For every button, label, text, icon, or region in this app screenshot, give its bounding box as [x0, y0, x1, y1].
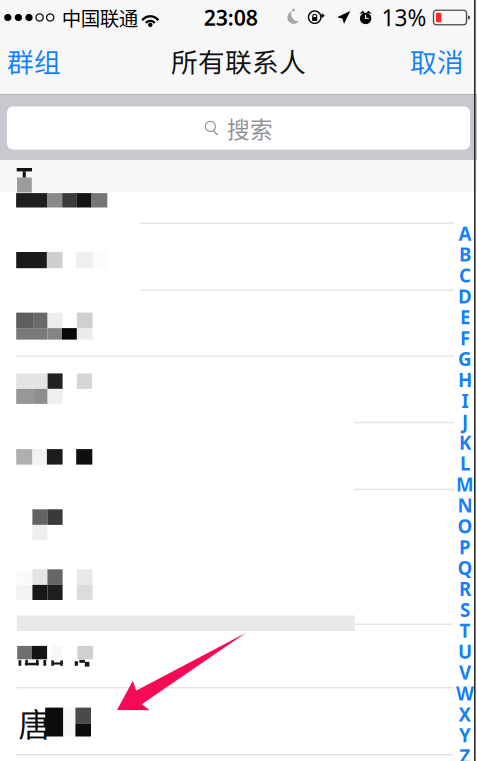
- staticText: E: [460, 305, 470, 329]
- staticText: J: [462, 409, 468, 434]
- staticText: U: [458, 639, 472, 664]
- staticText: C: [459, 263, 471, 288]
- staticText: G: [458, 346, 472, 371]
- staticText: P: [459, 535, 471, 559]
- staticText: T: [459, 618, 470, 643]
- staticText: M: [456, 472, 474, 497]
- staticText: A: [458, 221, 471, 246]
- staticText: V: [459, 660, 471, 685]
- button[interactable]: 搜索: [7, 106, 470, 149]
- staticText: L: [460, 451, 470, 476]
- staticText: 13%: [381, 2, 426, 32]
- staticText: 搜索: [227, 112, 273, 144]
- staticText: D: [458, 284, 472, 309]
- button[interactable]: [17, 556, 454, 614]
- button[interactable]: 群组: [0, 35, 68, 94]
- staticText: I: [461, 388, 468, 413]
- staticText: F: [460, 326, 470, 350]
- staticText: 取消: [410, 41, 464, 80]
- button[interactable]: 索引: [454, 223, 476, 761]
- staticText: Q: [457, 555, 472, 580]
- staticText: B: [459, 242, 471, 267]
- staticText: 中国联通: [62, 3, 138, 32]
- button[interactable]: [17, 689, 454, 755]
- staticText: 所有联系人: [171, 41, 306, 80]
- staticText: H: [458, 367, 472, 392]
- staticText: 唐: [18, 699, 50, 746]
- button[interactable]: [17, 633, 454, 688]
- button[interactable]: [17, 425, 454, 489]
- staticText: 23:08: [204, 3, 258, 32]
- staticText: O: [457, 514, 472, 538]
- button[interactable]: [17, 293, 454, 355]
- staticText: R: [459, 576, 471, 601]
- staticText: W: [456, 681, 474, 706]
- staticText: K: [459, 430, 471, 455]
- staticText: Z: [459, 744, 470, 761]
- staticText: N: [457, 493, 472, 518]
- button[interactable]: [17, 492, 454, 556]
- button[interactable]: [17, 193, 454, 253]
- staticText: Y: [459, 723, 471, 747]
- button[interactable]: [17, 226, 454, 288]
- staticText: 群组: [7, 41, 61, 80]
- button[interactable]: 取消: [397, 35, 477, 94]
- button[interactable]: [17, 359, 454, 423]
- button[interactable]: [17, 600, 454, 652]
- staticText: S: [460, 597, 470, 622]
- staticText: X: [458, 702, 471, 727]
